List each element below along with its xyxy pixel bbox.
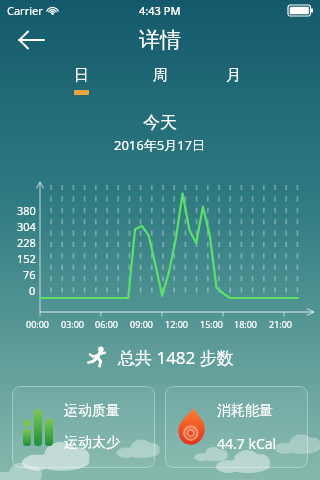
button[interactable]: Back [8,21,54,59]
staticText: 详情 [139,27,181,53]
button[interactable]: 周 [134,66,186,100]
staticText: 4:43 PM [139,3,181,18]
staticText: 03:00 [61,318,85,330]
staticText: 15:00 [200,318,224,330]
staticText: 周 [153,66,168,85]
staticText: 18:00 [234,318,258,330]
button[interactable]: 总共 1482 步数 [0,342,320,372]
button[interactable]: 运动质量 [12,386,155,468]
staticText: 2016年5月17日 [114,136,206,154]
button[interactable]: 消耗能量 [165,386,308,468]
staticText: 380 [17,203,36,218]
staticText: 消耗能量 [217,402,273,420]
staticText: 00:00 [26,318,50,330]
staticText: 运动太少 [64,434,120,452]
staticText: 152 [17,251,36,266]
button[interactable]: 日 [55,66,107,100]
staticText: 日 [74,66,89,85]
staticText: 09:00 [130,318,154,330]
staticText: 总共 1482 步数 [118,346,234,369]
staticText: 76 [23,267,36,282]
staticText: 12:00 [165,318,189,330]
staticText: 21:00 [269,318,293,330]
staticText: 今天 [143,112,177,133]
staticText: 运动质量 [64,402,120,420]
button[interactable]: 月 [207,66,259,100]
staticText: 0 [29,283,36,298]
staticText: 月 [226,66,241,85]
staticText: 44.7 kCal [217,434,277,453]
staticText: 304 [17,219,36,234]
staticText: 228 [17,235,36,250]
staticText: 06:00 [95,318,119,330]
staticText: Carrier [7,3,43,18]
